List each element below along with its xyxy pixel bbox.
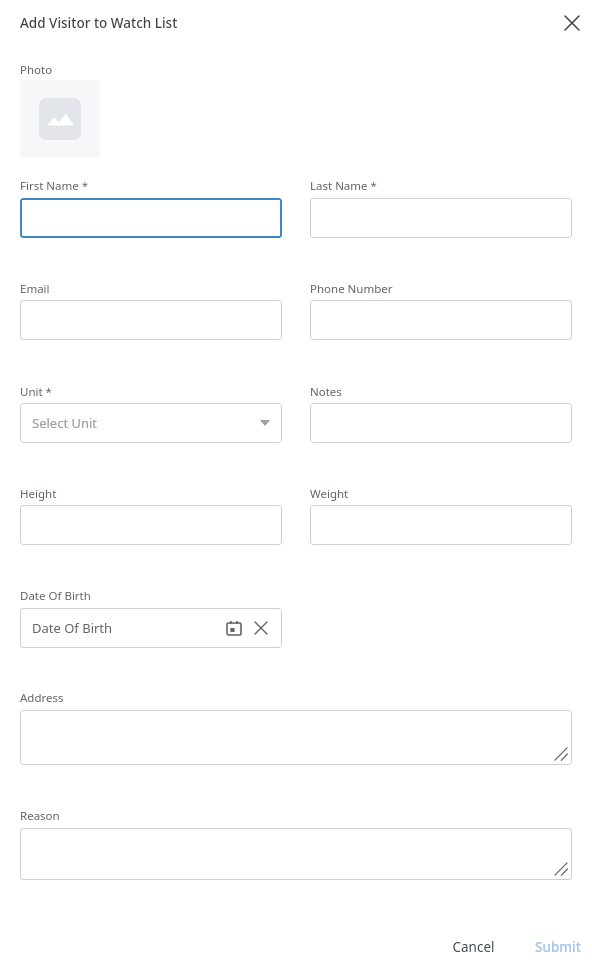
staticText: Unit *: [20, 384, 52, 400]
staticText: Notes: [310, 384, 342, 400]
button[interactable]: [310, 505, 572, 545]
staticText: Email: [20, 281, 50, 297]
button[interactable]: Date Of Birth: [20, 608, 282, 648]
button[interactable]: Add photo: [20, 80, 100, 157]
staticText: Phone Number: [310, 281, 393, 297]
staticText: Add Visitor to Watch List: [20, 14, 178, 32]
button[interactable]: [310, 198, 572, 238]
staticText: Select Unit: [32, 414, 98, 432]
staticText: Cancel: [452, 938, 495, 956]
staticText: Address: [20, 690, 64, 706]
staticText: Last Name *: [310, 178, 377, 194]
staticText: Submit: [535, 938, 581, 956]
button[interactable]: Open calendar: [223, 617, 245, 639]
staticText: Date Of Birth: [20, 588, 91, 604]
staticText: Date Of Birth: [32, 619, 113, 637]
staticText: Photo: [20, 62, 53, 78]
button[interactable]: [20, 710, 572, 765]
button[interactable]: [20, 505, 282, 545]
button[interactable]: [20, 198, 282, 238]
button[interactable]: [310, 300, 572, 340]
button[interactable]: Clear date: [250, 617, 272, 639]
button[interactable]: [310, 403, 572, 443]
button[interactable]: Cancel: [440, 932, 507, 962]
button[interactable]: [20, 828, 572, 880]
staticText: Height: [20, 486, 57, 502]
staticText: Reason: [20, 808, 60, 824]
button[interactable]: Submit: [523, 932, 592, 962]
button[interactable]: Select Unit: [20, 403, 282, 443]
button[interactable]: [20, 300, 282, 340]
staticText: Weight: [310, 486, 349, 502]
staticText: First Name *: [20, 178, 89, 194]
button[interactable]: Close: [557, 8, 587, 38]
